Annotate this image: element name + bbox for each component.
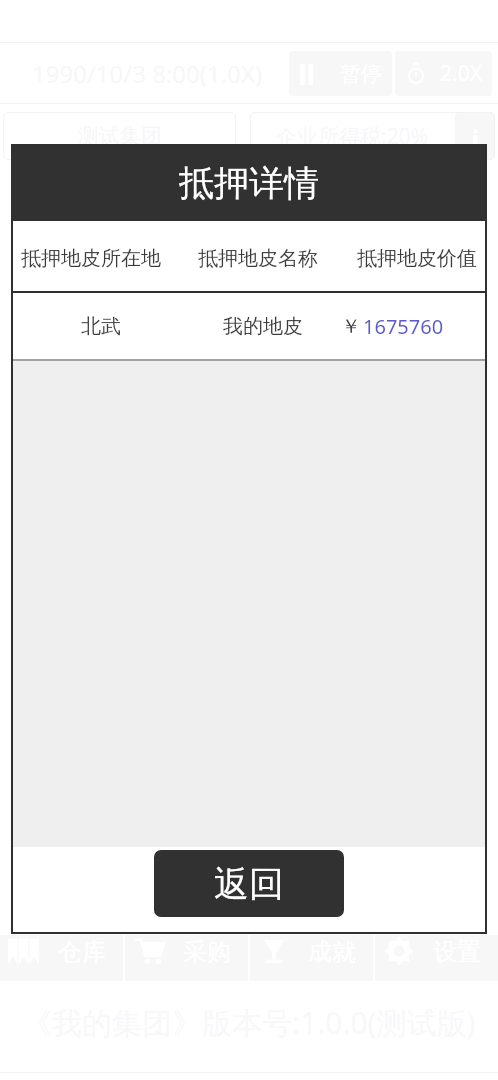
staticText: 仓库 (58, 937, 106, 967)
button[interactable]: 返回 (154, 850, 344, 917)
staticText: 测试集团 (78, 123, 162, 149)
staticText: 1675760 (363, 313, 444, 340)
staticText: ￥ (341, 314, 361, 339)
staticText: 暂停 (340, 61, 382, 87)
button[interactable]: 测试集团 (3, 112, 236, 160)
button[interactable]: Info (455, 112, 495, 160)
staticText: 返回 (214, 862, 284, 906)
staticText: 抵押地皮所在地 (21, 246, 161, 271)
staticText: 企业所得税:20% (276, 122, 429, 151)
staticText: 抵押地皮价值 (357, 246, 477, 271)
staticText: 北武 (81, 314, 121, 339)
staticText: 成就 (308, 937, 356, 967)
staticText: 抵押详情 (179, 161, 319, 205)
staticText: 采购 (183, 937, 231, 967)
staticText: 设置 (433, 937, 481, 967)
staticText: 抵押地皮名称 (198, 246, 318, 271)
staticText: 我的地皮 (223, 314, 303, 339)
